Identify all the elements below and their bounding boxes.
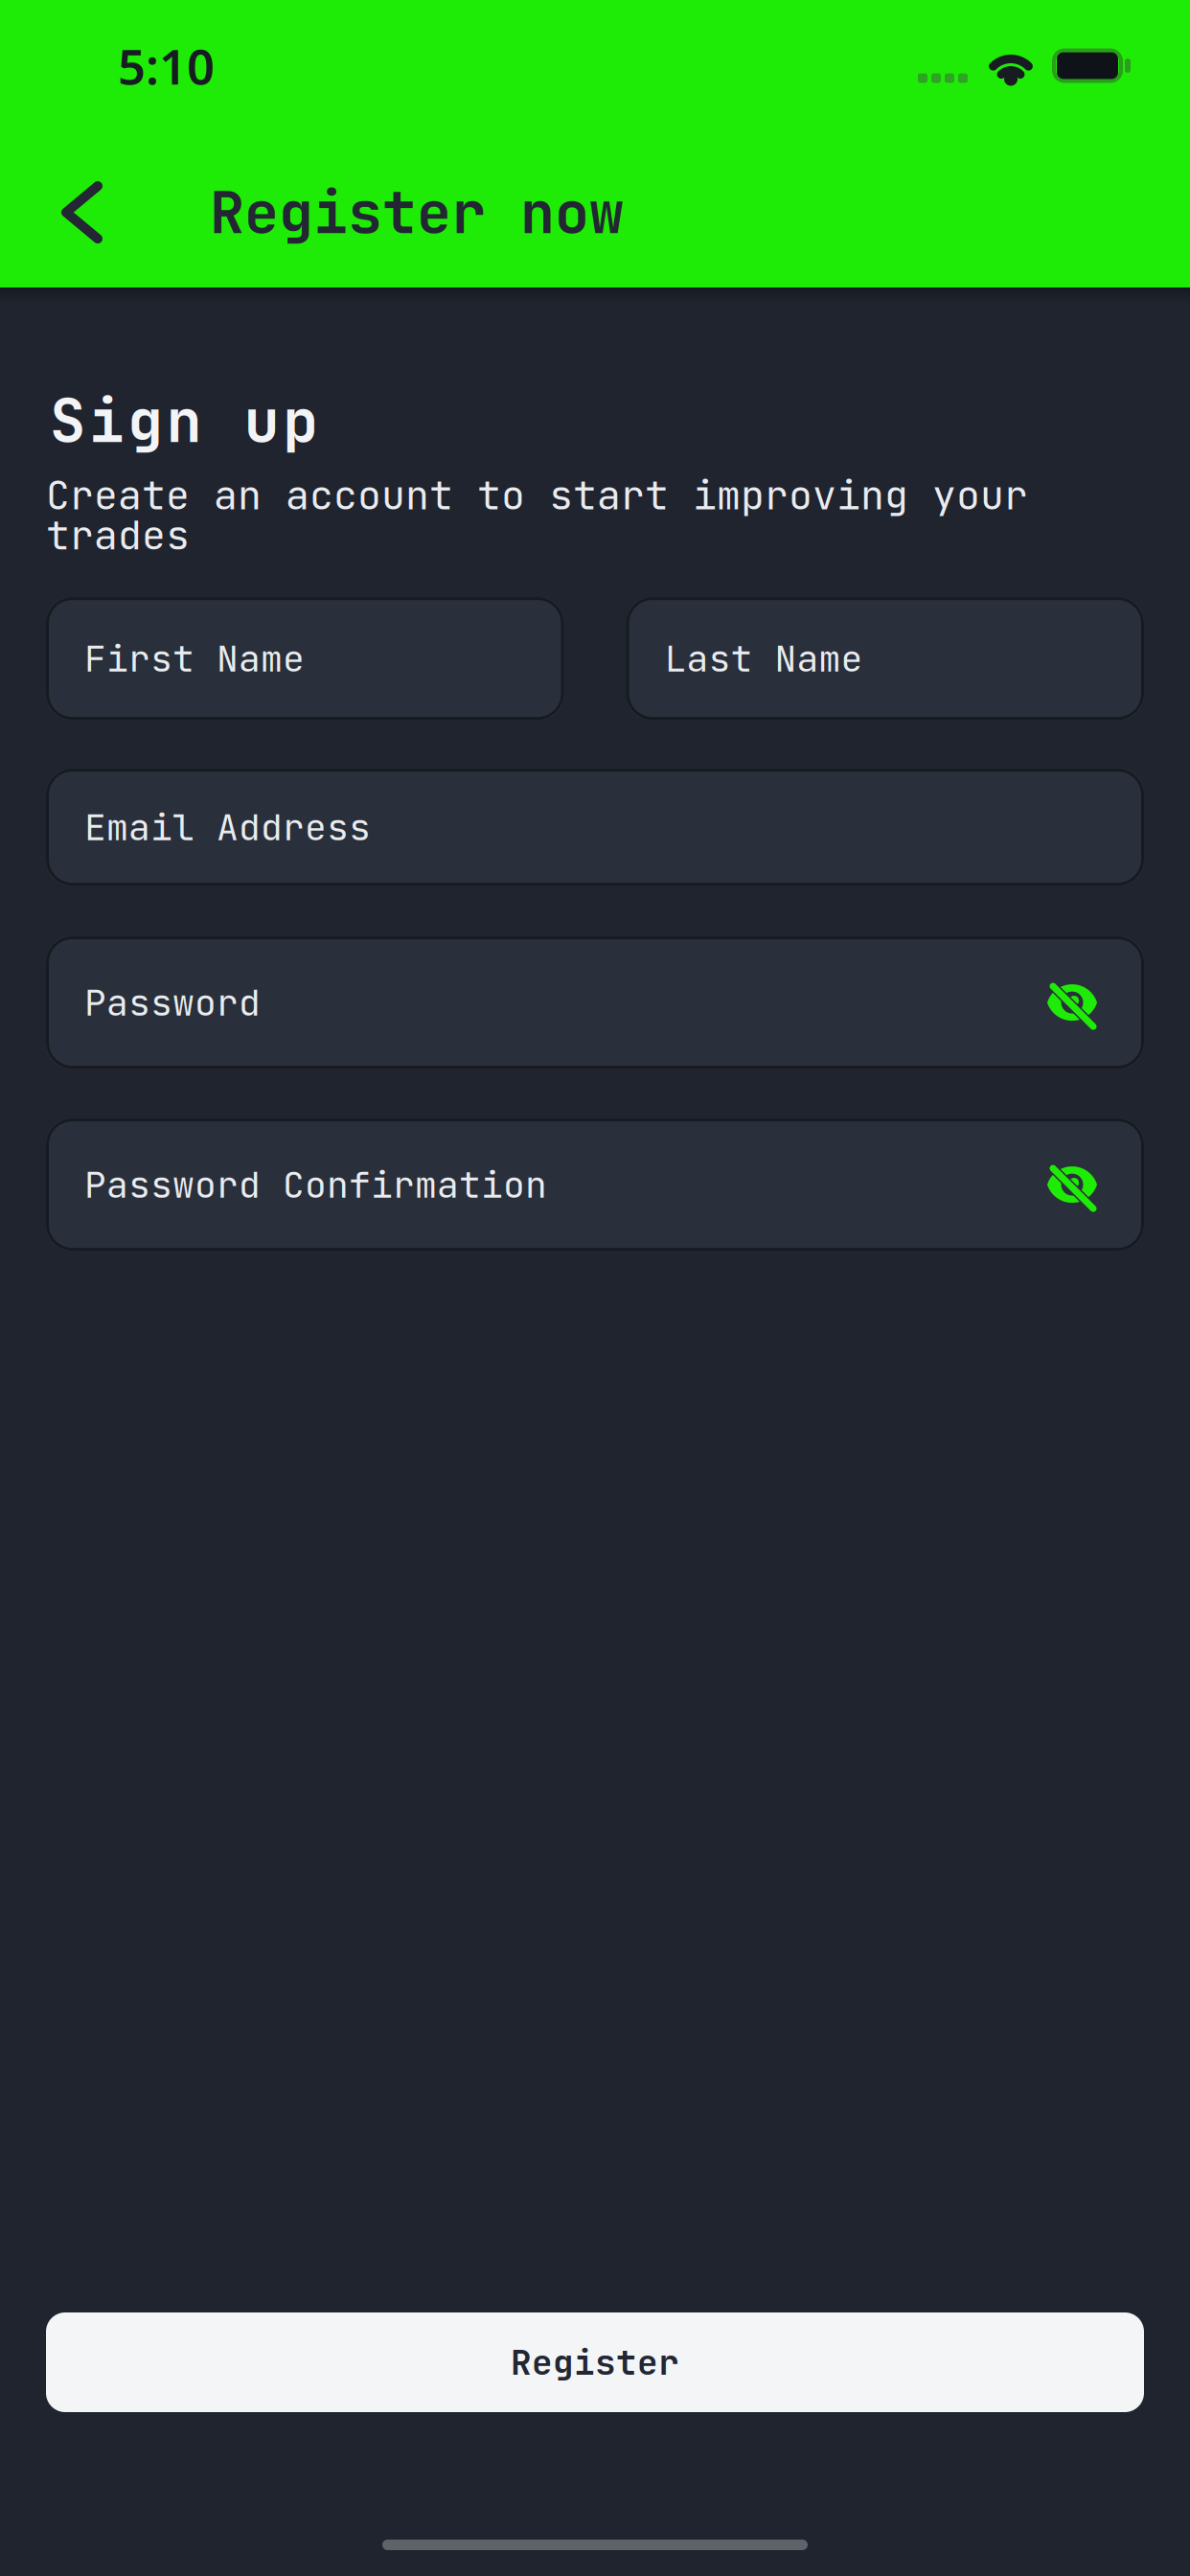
button[interactable]: Password Confirmation: [46, 1118, 1144, 1251]
staticText: Register: [511, 2339, 679, 2385]
button[interactable]: Email Address: [46, 769, 1144, 886]
button[interactable]: Register: [46, 2312, 1144, 2412]
staticText: First Name: [84, 634, 305, 683]
button[interactable]: Last Name: [626, 597, 1144, 720]
button[interactable]: First Name: [46, 597, 564, 720]
staticText: Register now: [210, 174, 624, 250]
staticText: Create an account to start improving you…: [46, 475, 1028, 555]
staticText: Sign up: [50, 381, 318, 460]
button[interactable]: Back: [0, 186, 98, 239]
staticText: Last Name: [664, 634, 863, 683]
button[interactable]: Show password: [1045, 1161, 1099, 1209]
button[interactable]: Show password: [1045, 979, 1099, 1026]
staticText: Password Confirmation: [84, 1161, 547, 1209]
staticText: Password: [84, 978, 261, 1027]
staticText: 5:10: [118, 33, 215, 99]
button[interactable]: Password: [46, 936, 1144, 1069]
staticText: Email Address: [84, 803, 371, 851]
